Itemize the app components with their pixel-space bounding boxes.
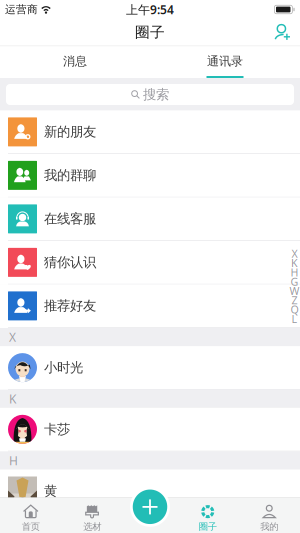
staticText: 新的朋友 bbox=[44, 124, 96, 140]
button[interactable]: 推荐好友 bbox=[0, 284, 300, 328]
button[interactable]: Create bbox=[130, 487, 170, 527]
button[interactable]: 搜索 bbox=[0, 78, 300, 110]
button[interactable]: 我的群聊 bbox=[0, 154, 300, 197]
button[interactable]: 消息 bbox=[0, 46, 150, 78]
staticText: Q bbox=[290, 302, 298, 317]
staticText: K bbox=[9, 391, 16, 407]
staticText: 卡莎 bbox=[44, 421, 70, 437]
button[interactable]: 猜你认识 bbox=[0, 241, 300, 284]
staticText: 圈子 bbox=[135, 23, 165, 41]
staticText: 通讯录 bbox=[207, 54, 243, 68]
staticText: 圈子 bbox=[199, 521, 217, 532]
button[interactable]: 圈子 bbox=[177, 498, 238, 533]
staticText: 搜索 bbox=[143, 86, 169, 103]
staticText: H bbox=[9, 452, 18, 468]
staticText: L bbox=[291, 312, 297, 326]
staticText: 我的群聊 bbox=[44, 167, 96, 184]
button[interactable]: 在线客服 bbox=[0, 197, 300, 241]
staticText: 在线客服 bbox=[44, 211, 96, 227]
staticText: 上午9:54 bbox=[126, 1, 174, 17]
staticText: 黄 bbox=[44, 483, 57, 499]
staticText: H bbox=[290, 265, 298, 279]
staticText: 小时光 bbox=[44, 359, 83, 376]
staticText: K bbox=[291, 256, 298, 270]
staticText: 推荐好友 bbox=[44, 298, 96, 314]
staticText: 猜你认识 bbox=[44, 254, 96, 271]
staticText: 我的 bbox=[260, 521, 278, 532]
button[interactable]: 我的 bbox=[238, 498, 300, 533]
button[interactable]: 卡莎 bbox=[0, 408, 300, 451]
button[interactable]: 首页 bbox=[0, 498, 61, 533]
button[interactable]: 通讯录 bbox=[150, 46, 300, 78]
button[interactable]: 选材 bbox=[61, 498, 123, 533]
button[interactable]: 黄 bbox=[0, 470, 300, 513]
staticText: G bbox=[290, 274, 298, 289]
button[interactable]: 新的朋友 bbox=[0, 110, 300, 154]
staticText: X bbox=[9, 329, 16, 345]
staticText: W bbox=[289, 284, 299, 298]
button[interactable]: 小时光 bbox=[0, 346, 300, 390]
staticText: 选材 bbox=[83, 521, 101, 532]
staticText: 首页 bbox=[22, 521, 40, 532]
staticText: Z bbox=[291, 293, 297, 307]
staticText: 运营商 bbox=[5, 3, 38, 16]
staticText: 消息 bbox=[63, 54, 87, 68]
staticText: X bbox=[291, 247, 297, 261]
button[interactable]: Add friend bbox=[265, 23, 300, 42]
